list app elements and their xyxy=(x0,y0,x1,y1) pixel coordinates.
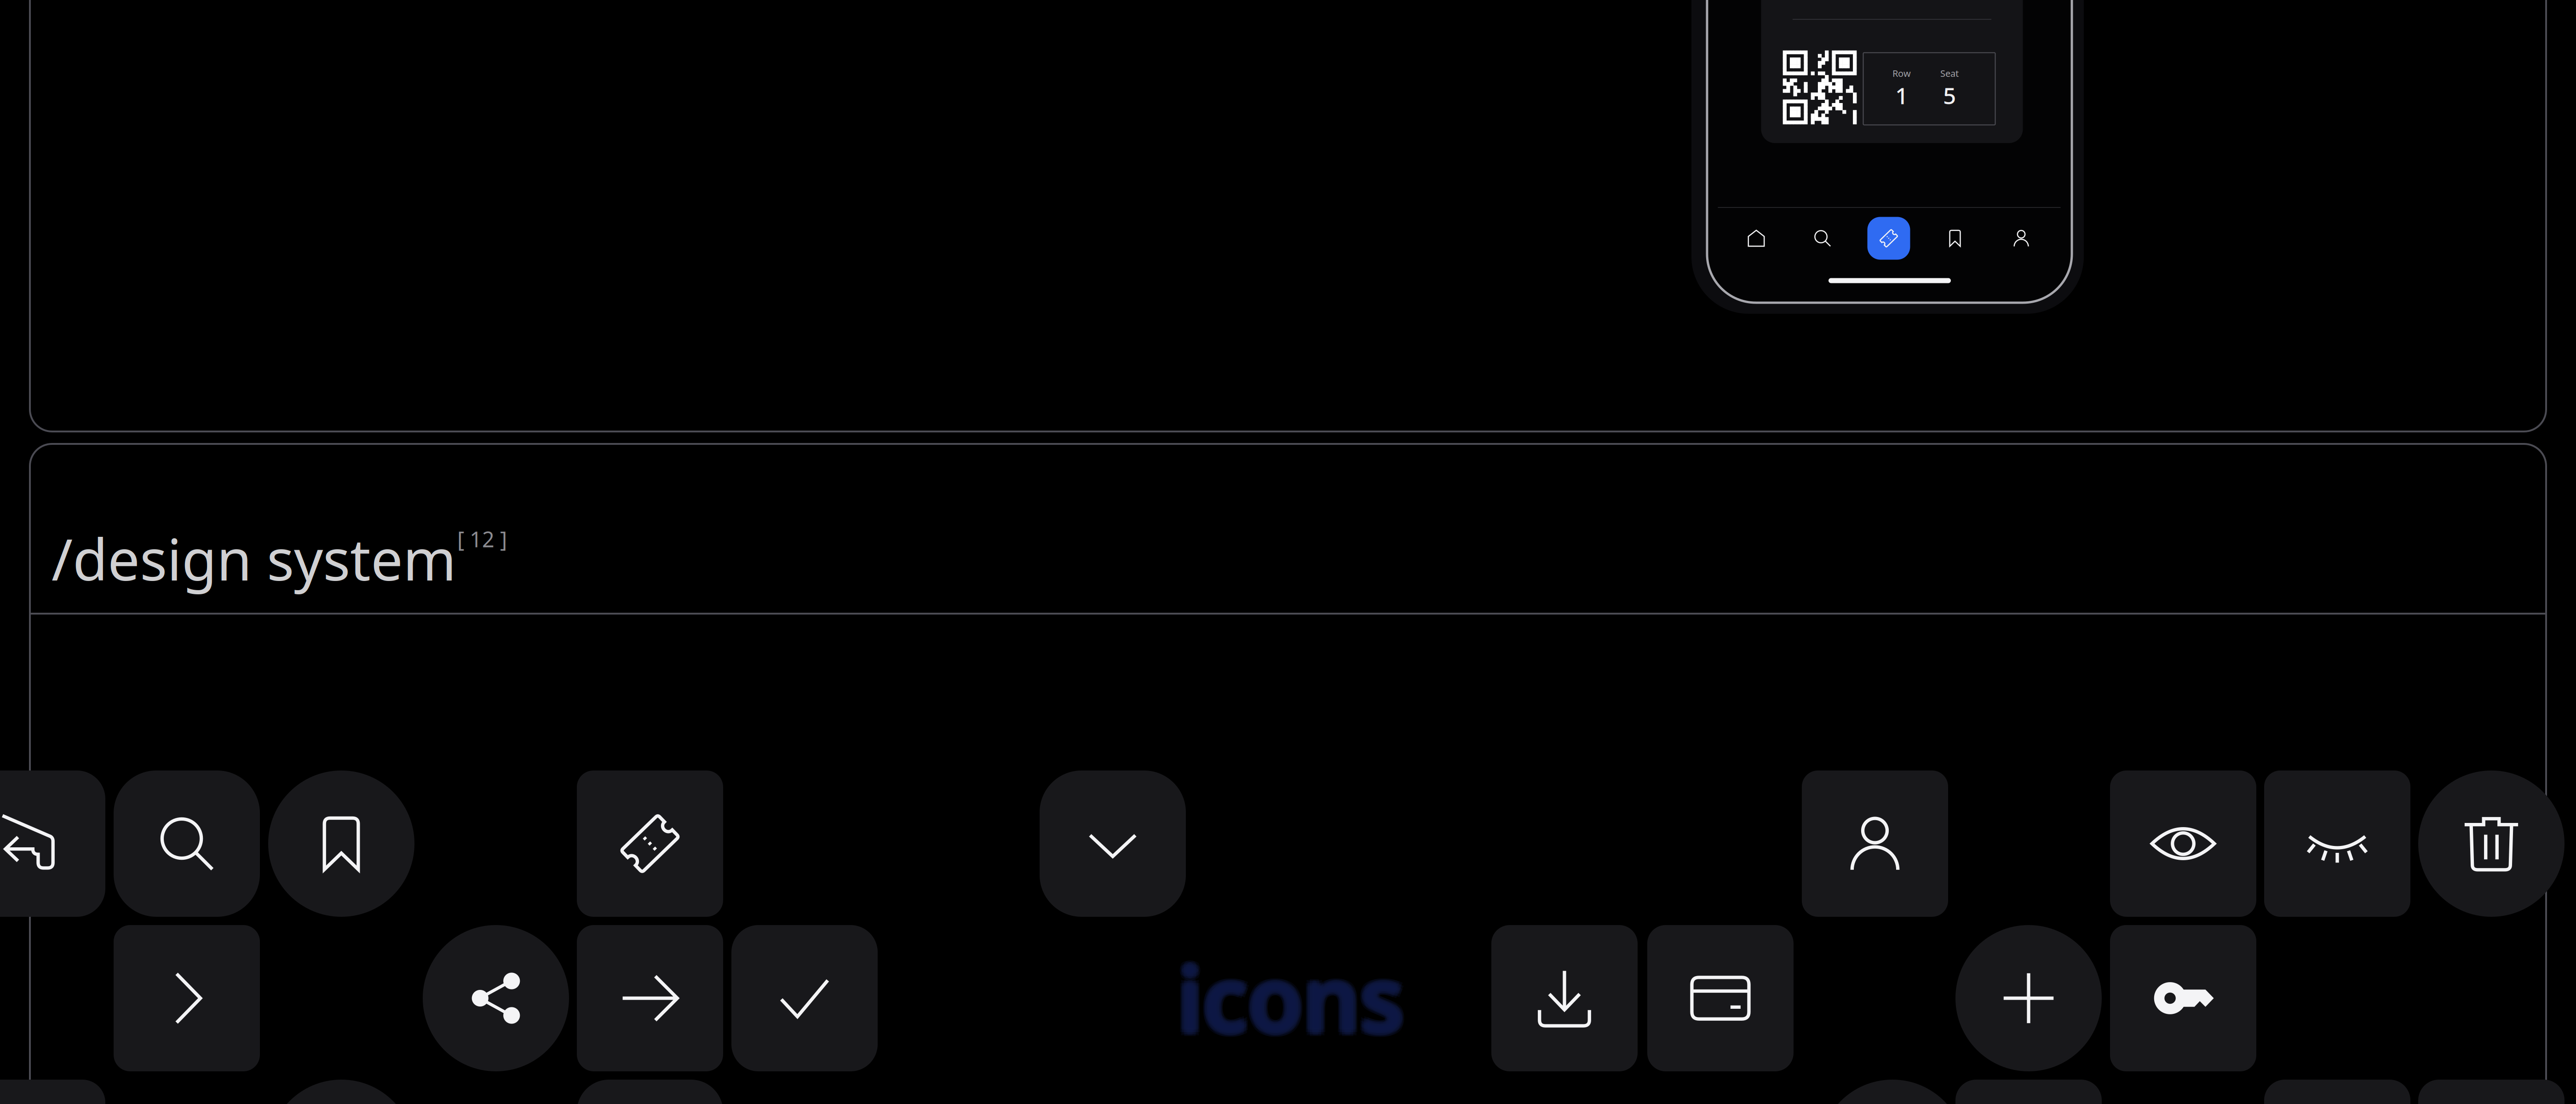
button[interactable]: Confirm xyxy=(731,925,878,1071)
button[interactable]: Search xyxy=(114,770,260,917)
button[interactable]: Profile xyxy=(1988,215,2054,261)
staticText: icons xyxy=(1174,941,1401,1060)
staticText: 1 xyxy=(1895,80,1908,110)
staticText: icons xyxy=(1177,934,1404,1053)
button[interactable]: Password xyxy=(2110,925,2256,1071)
button[interactable]: Collapse xyxy=(1040,770,1186,917)
staticText: icons xyxy=(1180,938,1406,1057)
staticText: [ 12 ] xyxy=(457,525,507,553)
button[interactable]: Saved xyxy=(1922,215,1988,261)
staticText: icons xyxy=(1179,940,1406,1059)
staticText: 5 xyxy=(1943,80,1956,110)
staticText: icons xyxy=(1179,936,1406,1055)
button[interactable]: Reply xyxy=(0,770,105,917)
staticText: icons xyxy=(1181,941,1407,1060)
button[interactable]: Continue xyxy=(577,925,723,1071)
staticText: icons xyxy=(1177,936,1404,1054)
staticText: icons xyxy=(1173,938,1400,1057)
staticText: icons xyxy=(1181,935,1407,1053)
staticText: icons xyxy=(1177,938,1404,1057)
button[interactable]: Tickets xyxy=(1856,215,1922,261)
button[interactable]: Next xyxy=(114,925,260,1071)
button[interactable]: Account xyxy=(1802,770,1948,917)
staticText: icons xyxy=(1177,942,1404,1061)
button[interactable]: Share xyxy=(423,925,569,1071)
staticText: icons xyxy=(1182,938,1408,1057)
staticText: /design system xyxy=(52,521,456,596)
button[interactable]: Show xyxy=(2110,770,2256,917)
button[interactable]: Ticket xyxy=(577,770,723,917)
staticText: icons xyxy=(1175,938,1402,1057)
staticText: icons xyxy=(1176,936,1402,1055)
button[interactable]: Delete xyxy=(2418,770,2564,917)
staticText: icons xyxy=(1174,935,1401,1053)
button[interactable]: Bookmark xyxy=(268,770,414,917)
button[interactable]: Search xyxy=(1789,215,1856,261)
staticText: Seat xyxy=(1940,67,1959,79)
button[interactable]: Hide xyxy=(2264,770,2410,917)
button[interactable]: Home xyxy=(1723,215,1789,261)
staticText: Row xyxy=(1892,67,1911,79)
button[interactable]: Add xyxy=(1955,925,2102,1071)
staticText: icons xyxy=(1177,940,1404,1059)
staticText: icons xyxy=(1176,940,1402,1059)
button[interactable]: Download xyxy=(1491,925,1638,1071)
button[interactable]: Payment method xyxy=(1647,925,1794,1071)
